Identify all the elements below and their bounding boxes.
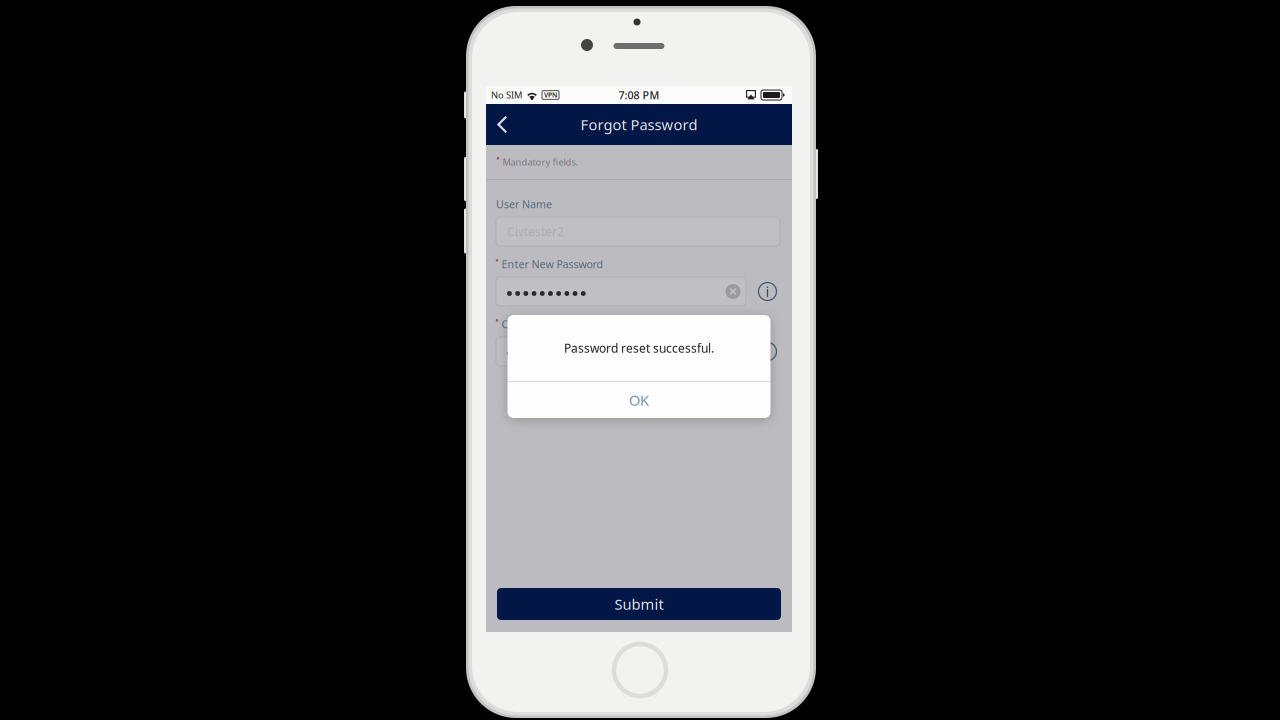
staticText: Forgot Password [580, 115, 697, 134]
staticText: Civtester2 [507, 223, 564, 239]
staticText: Mandatory fields. [502, 156, 578, 168]
staticText: 7:08 PM [618, 88, 659, 102]
staticText: OK [629, 390, 649, 410]
button[interactable]: Submit [497, 588, 781, 620]
button[interactable]: Back [486, 104, 519, 145]
staticText: Submit [614, 594, 663, 614]
button[interactable]: Password requirements [758, 282, 777, 301]
button[interactable]: Clear text [725, 283, 741, 299]
staticText: No SIM [491, 89, 522, 101]
button[interactable]: OK [507, 382, 770, 418]
staticText: Enter New Password [501, 257, 603, 271]
staticText: User Name [496, 197, 552, 211]
staticText: Password reset successful. [564, 340, 714, 356]
staticText: Confirm Password [501, 317, 591, 331]
staticText: VPN [544, 91, 557, 99]
button[interactable]: Password requirements [758, 342, 777, 361]
